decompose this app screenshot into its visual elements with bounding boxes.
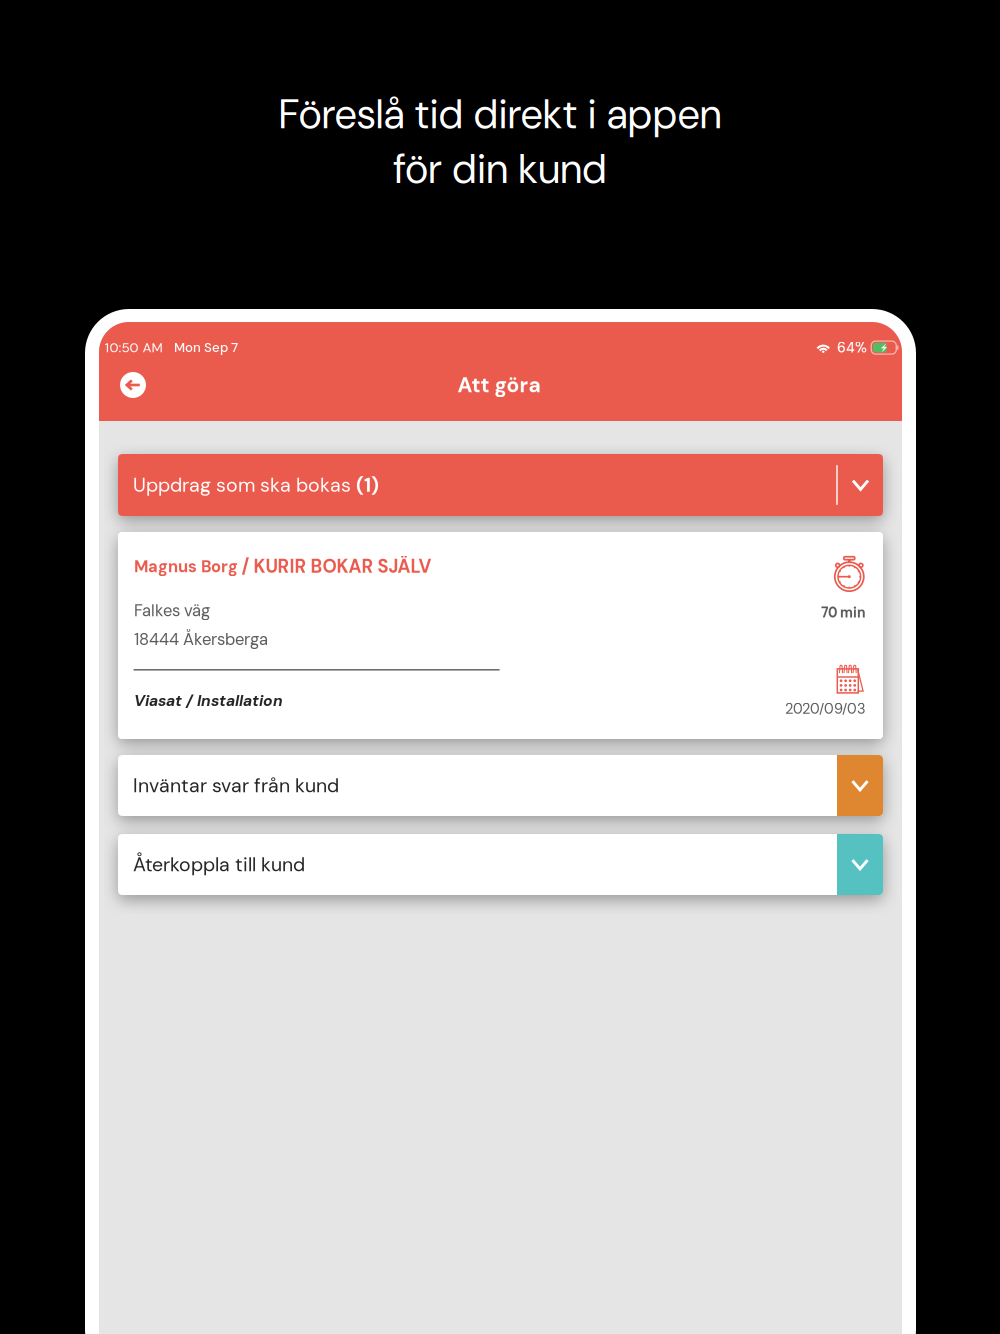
staticText: Att göra (457, 371, 540, 399)
staticText: Viasat / Installation (134, 690, 283, 711)
staticText: (1) (356, 472, 379, 498)
button[interactable]: Inväntar svar från kund (118, 755, 883, 816)
button[interactable]: Uppdrag som ska bokas (118, 454, 883, 516)
staticText: Falkes väg (134, 600, 210, 621)
staticText: Uppdrag som ska bokas (133, 472, 356, 498)
button[interactable]: Återkoppla till kund (118, 834, 883, 895)
staticText: för din kund (393, 143, 607, 196)
staticText: Föreslå tid direkt i appen (278, 88, 721, 141)
staticText: 10:50 AM (104, 339, 162, 356)
staticText: 64% (837, 338, 867, 357)
button[interactable]: Back (99, 366, 162, 413)
staticText: 2020/09/03 (785, 699, 866, 718)
staticText: / KURIR BOKAR SJÄLV (241, 555, 431, 578)
staticText: Magnus Borg (134, 556, 238, 577)
staticText: 18444 Åkersberga (134, 628, 268, 650)
staticText: Inväntar svar från kund (133, 773, 339, 798)
staticText: Mon Sep 7 (174, 339, 238, 356)
staticText: Återkoppla till kund (133, 852, 305, 877)
staticText: 70 min (821, 604, 866, 622)
